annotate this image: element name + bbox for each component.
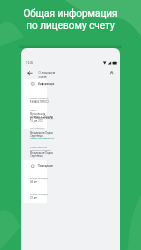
- staticText: Адрес: [30, 109, 37, 112]
- staticText: Информация: [38, 82, 55, 85]
- staticText: Мещеряков Лидия Сергеевна: [30, 131, 55, 138]
- staticText: Номер лицевого счета: [30, 96, 55, 102]
- staticText: 12:36: [26, 61, 33, 65]
- staticText: Собственник: [30, 127, 44, 130]
- staticText: Общая площадь: [30, 177, 48, 180]
- button[interactable]: Печать: [107, 68, 116, 77]
- staticText: по лицевому счету: [26, 20, 115, 32]
- button[interactable]: Права собственности: [30, 137, 54, 140]
- staticText: Жилая площадь: [30, 192, 48, 195]
- staticText: Общая информация: [23, 8, 118, 20]
- staticText: Ответственный квартиросъемщик: [30, 145, 55, 151]
- staticText: 123456789012: [30, 100, 49, 103]
- button[interactable]: Назад: [25, 69, 34, 78]
- staticText: О лицевом счете: [38, 70, 63, 78]
- staticText: 51 м²: [30, 196, 37, 199]
- staticText: Московская область, г. Москва,: [30, 112, 55, 119]
- staticText: Мещеряков Лидия Сергеевна: [30, 151, 55, 158]
- staticText: Помещение: [38, 164, 53, 167]
- staticText: ул. Ковалевская д. 15, кв. 212: [30, 117, 55, 123]
- staticText: 65 м²: [30, 181, 37, 184]
